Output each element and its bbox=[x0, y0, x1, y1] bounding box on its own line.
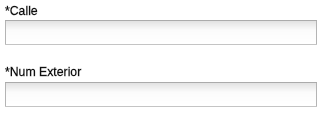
button[interactable]: Num Exterior bbox=[5, 82, 317, 107]
button[interactable]: *Num Exterior bbox=[5, 65, 82, 79]
button[interactable]: Calle bbox=[5, 20, 317, 45]
button[interactable]: *Calle bbox=[5, 4, 38, 18]
